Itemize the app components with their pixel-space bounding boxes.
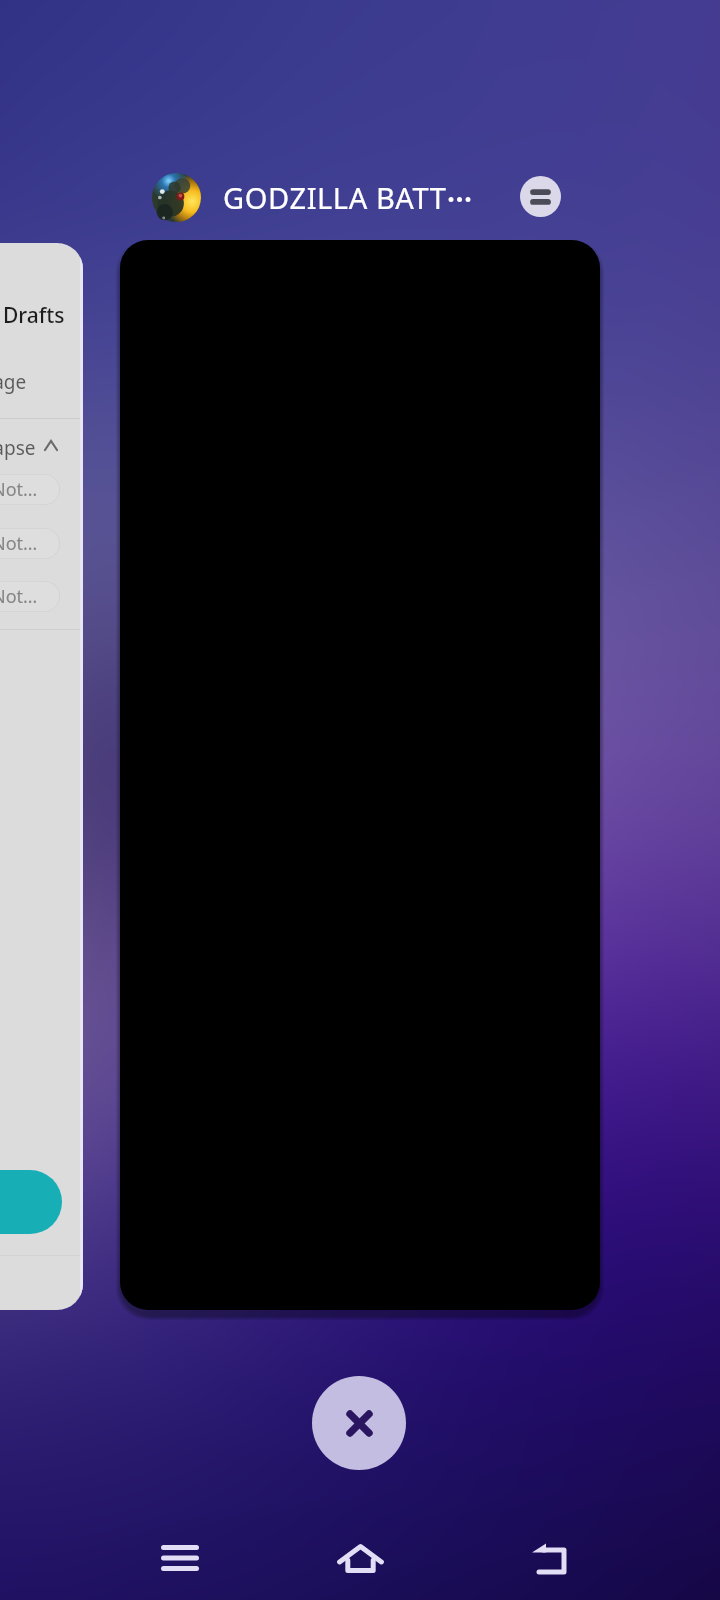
button[interactable] (120, 240, 600, 1310)
button[interactable]: App options (520, 176, 561, 217)
button[interactable] (0, 1170, 62, 1234)
button[interactable]: Close task (312, 1376, 406, 1470)
staticText: Not… (0, 477, 38, 502)
button[interactable]: Not… (0, 528, 60, 559)
button[interactable]: Drafts (0, 243, 83, 1310)
staticText: GODZILLA BATT (223, 178, 447, 217)
staticText: Not… (0, 584, 38, 609)
staticText: Message (0, 369, 27, 395)
button[interactable]: Recent apps (132, 1523, 228, 1593)
button[interactable]: Not… (0, 581, 60, 612)
button[interactable]: Not… (0, 474, 60, 505)
button[interactable]: Back (502, 1526, 598, 1596)
button[interactable]: GODZILLA BATT (152, 170, 473, 224)
button[interactable]: Home (312, 1523, 408, 1593)
staticText: Not… (0, 531, 38, 556)
staticText: Collapse (0, 435, 36, 461)
staticText: Drafts (3, 301, 65, 330)
